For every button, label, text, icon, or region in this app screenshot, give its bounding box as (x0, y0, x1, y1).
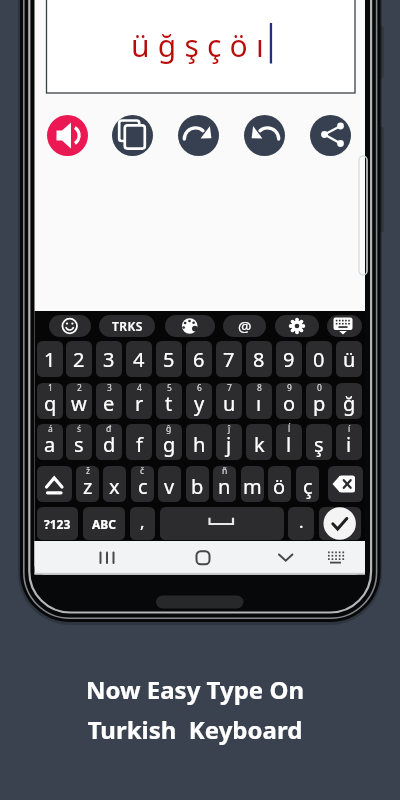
staticText: , (140, 510, 145, 533)
button[interactable]: b (186, 466, 209, 502)
button[interactable] (310, 115, 351, 156)
staticText: ABC (92, 516, 116, 532)
staticText: v (164, 473, 175, 500)
button[interactable]: TRKS (99, 315, 155, 337)
button[interactable]: m (241, 466, 264, 502)
button[interactable]: 1 (37, 383, 63, 419)
staticText: á (48, 423, 53, 435)
staticText: y (194, 390, 205, 417)
button[interactable]: ü (336, 341, 362, 377)
button[interactable]: 6 (186, 341, 212, 377)
button[interactable] (160, 507, 284, 540)
button[interactable]: 2 (66, 383, 92, 419)
button[interactable] (268, 543, 304, 573)
button[interactable]: ñ (213, 466, 236, 502)
button[interactable]: , (130, 507, 155, 540)
button[interactable]: 6 (186, 383, 212, 419)
button[interactable]: ş (306, 424, 332, 460)
staticText: 6 (197, 382, 202, 394)
button[interactable] (112, 115, 153, 156)
button[interactable] (90, 543, 126, 573)
button[interactable] (328, 466, 363, 502)
button[interactable]: ç (296, 466, 319, 502)
button[interactable]: v (158, 466, 181, 502)
button[interactable]: 0 (306, 383, 332, 419)
staticText: 4 (133, 346, 145, 373)
staticText: p (313, 390, 326, 417)
button[interactable]: ĺ (276, 424, 302, 460)
staticText: s (74, 431, 84, 458)
staticText: f (136, 431, 143, 458)
staticText: 8 (253, 346, 265, 373)
staticText: l (286, 431, 292, 458)
button[interactable]: 4 (126, 341, 152, 377)
staticText: q (44, 390, 57, 417)
button[interactable] (185, 543, 221, 573)
button[interactable]: đ (96, 424, 122, 460)
staticText: 1 (44, 346, 56, 373)
button[interactable]: ABC (83, 507, 125, 540)
button[interactable] (275, 315, 319, 337)
button[interactable]: k (246, 424, 272, 460)
staticText: Turkish Keyboard (0, 713, 395, 756)
button[interactable]: 3 (96, 341, 122, 377)
button[interactable]: 5 (156, 383, 182, 419)
staticText: 0 (313, 346, 325, 373)
button[interactable]: h (186, 424, 212, 460)
staticText: 3 (103, 346, 115, 373)
button[interactable]: ž (76, 466, 99, 502)
button[interactable]: 9 (276, 383, 302, 419)
staticText: ž (86, 465, 90, 477)
staticText: 2 (77, 382, 82, 394)
button[interactable]: . (288, 507, 314, 540)
button[interactable] (327, 315, 362, 337)
button[interactable]: ĝ (156, 424, 182, 460)
button[interactable]: 5 (156, 341, 182, 377)
button[interactable]: 7 (216, 383, 242, 419)
button[interactable] (49, 315, 91, 337)
staticText: a (44, 431, 56, 458)
button[interactable] (319, 507, 361, 540)
button[interactable]: ğ (336, 383, 362, 419)
button[interactable]: 8 (246, 383, 272, 419)
button[interactable]: ö (268, 466, 291, 502)
staticText: h (193, 431, 206, 458)
staticText: ı (256, 390, 262, 417)
staticText: Now Easy Type On (0, 673, 395, 716)
staticText: 7 (223, 346, 235, 373)
button[interactable]: 7 (216, 341, 242, 377)
button[interactable]: 4 (126, 383, 152, 419)
button[interactable]: í (336, 424, 362, 460)
staticText: ç (303, 473, 313, 500)
button[interactable] (37, 466, 72, 502)
staticText: x (109, 473, 120, 500)
button[interactable] (244, 115, 285, 156)
staticText: z (83, 473, 93, 500)
button[interactable] (178, 115, 219, 156)
staticText: c (138, 473, 148, 500)
staticText: b (191, 473, 204, 500)
staticText: 9 (283, 346, 295, 373)
staticText: e (103, 390, 115, 417)
button[interactable] (47, 115, 88, 156)
staticText: 7 (227, 382, 232, 394)
button[interactable]: x (103, 466, 126, 502)
button[interactable]: 3 (96, 383, 122, 419)
staticText: ĺ (288, 423, 291, 435)
button[interactable]: 0 (306, 341, 332, 377)
button[interactable] (322, 543, 350, 573)
button[interactable]: ĵ (216, 424, 242, 460)
button[interactable]: 8 (246, 341, 272, 377)
staticText: 4 (137, 382, 142, 394)
staticText: t (165, 390, 173, 417)
button[interactable]: f (126, 424, 152, 460)
button[interactable]: @ (223, 315, 266, 337)
button[interactable] (165, 315, 215, 337)
button[interactable]: 2 (66, 341, 92, 377)
button[interactable]: á (37, 424, 63, 460)
button[interactable]: č (131, 466, 154, 502)
button[interactable]: ?123 (37, 507, 78, 540)
button[interactable]: 1 (37, 341, 63, 377)
button[interactable]: 9 (276, 341, 302, 377)
button[interactable]: ś (66, 424, 92, 460)
